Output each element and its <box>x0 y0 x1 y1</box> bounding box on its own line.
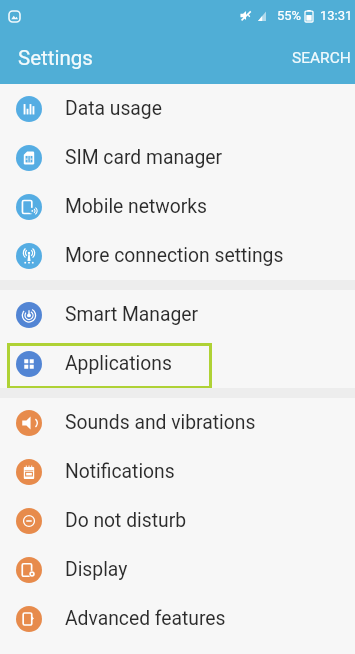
staticText: SIM card manager <box>65 146 223 169</box>
staticText: Do not disturb <box>65 509 187 532</box>
button[interactable]: Display <box>0 545 355 594</box>
staticText: Data usage <box>65 97 162 120</box>
button[interactable]: SEARCH <box>278 38 355 76</box>
staticText: 55% <box>277 8 302 23</box>
other: Screenshot captured <box>8 10 21 23</box>
staticText: More connection settings <box>65 244 284 267</box>
staticText: Sounds and vibrations <box>65 411 256 434</box>
staticText: 13:31 <box>320 8 353 23</box>
button[interactable]: Smart Manager <box>0 290 355 339</box>
button[interactable]: Applications <box>0 339 355 388</box>
staticText: Advanced features <box>65 607 226 630</box>
button[interactable]: More connection settings <box>0 231 355 280</box>
staticText: Applications <box>65 352 172 375</box>
staticText: Smart Manager <box>65 303 199 326</box>
button[interactable]: Data usage <box>0 84 355 133</box>
staticText: Display <box>65 558 128 581</box>
button[interactable]: Mobile networks <box>0 182 355 231</box>
button[interactable]: SIM card manager <box>0 133 355 182</box>
staticText: Notifications <box>65 460 175 483</box>
staticText: Mobile networks <box>65 195 208 218</box>
button[interactable]: Do not disturb <box>0 496 355 545</box>
button[interactable]: Sounds and vibrations <box>0 398 355 447</box>
button[interactable]: Advanced features <box>0 594 355 643</box>
button[interactable]: Notifications <box>0 447 355 496</box>
staticText: Settings <box>18 46 93 70</box>
staticText: SEARCH <box>292 49 351 67</box>
